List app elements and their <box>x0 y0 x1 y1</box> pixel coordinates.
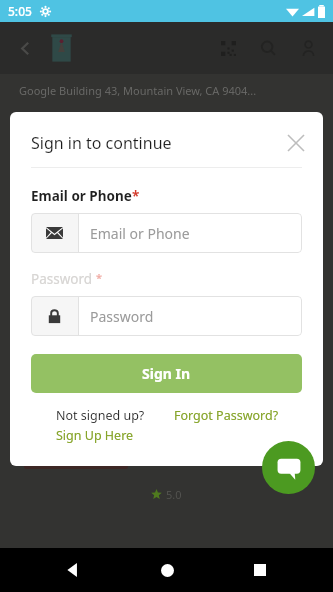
staticText: Sign In <box>142 364 191 383</box>
staticText: Sign in to continue <box>31 132 172 154</box>
staticText: Forgot Password? <box>174 407 279 424</box>
staticText: 5.0 <box>166 487 182 502</box>
button[interactable]: Back <box>10 33 40 63</box>
button[interactable]: Back <box>53 550 93 590</box>
button[interactable]: Sign In <box>31 354 302 393</box>
staticText: * <box>132 187 140 205</box>
button[interactable]: Close <box>281 128 311 158</box>
staticText: Email or Phone <box>31 187 132 205</box>
staticText: 5:05 <box>8 3 32 19</box>
button[interactable]: Forgot Password? <box>174 407 279 424</box>
staticText: * <box>96 270 103 285</box>
button[interactable]: Home <box>147 550 187 590</box>
button[interactable]: Not signed up? <box>56 407 145 444</box>
button[interactable]: Chat <box>262 441 315 494</box>
staticText: Not signed up? <box>56 407 145 424</box>
staticText: Google Building 43, Mountain View, CA 94… <box>19 83 257 98</box>
staticText: Password <box>90 307 154 326</box>
button[interactable]: Scan QR code <box>213 33 243 63</box>
staticText: Sign Up Here <box>56 427 134 444</box>
staticText: Email or Phone <box>90 224 190 243</box>
button[interactable]: Recent apps <box>240 550 280 590</box>
staticText: Password <box>31 270 96 288</box>
button[interactable]: Password <box>31 296 302 336</box>
button[interactable]: Email or Phone <box>31 213 302 253</box>
